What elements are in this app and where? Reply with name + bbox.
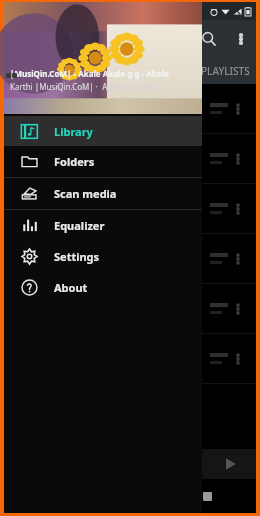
button[interactable]: Folders	[4, 146, 202, 177]
button[interactable]: About	[4, 272, 202, 303]
staticText: Scan media	[54, 186, 117, 201]
button[interactable]: Track options	[4, 134, 256, 183]
button[interactable]: Track options	[4, 234, 256, 283]
button[interactable]: Track options	[4, 284, 256, 333]
staticText: Equalizer	[54, 218, 105, 233]
button[interactable]: Track options	[227, 248, 249, 270]
button[interactable]: More options	[226, 24, 256, 54]
button[interactable]: PLAYLISTS	[201, 64, 250, 78]
button[interactable]: Track options	[227, 98, 249, 120]
button[interactable]: Track options	[227, 348, 249, 370]
button[interactable]: Track options	[227, 198, 249, 220]
button[interactable]: Search	[192, 22, 226, 56]
button[interactable]: Recents	[194, 483, 220, 509]
staticText: |MusiQin.CoM| - Akale Akale g.g - Akale	[10, 68, 169, 79]
button[interactable]: Track options	[227, 148, 249, 170]
button[interactable]: Scan media	[4, 178, 202, 209]
button[interactable]: Play	[218, 452, 242, 476]
staticText: PLAYLISTS	[201, 64, 250, 78]
staticText: Folders	[54, 154, 95, 169]
button[interactable]: Library	[4, 116, 202, 146]
button[interactable]: Track options	[4, 334, 256, 383]
button[interactable]: Track options	[4, 184, 256, 233]
staticText: Library	[54, 124, 93, 139]
staticText: Karthi |MusiQin.CoM| · Akale | MusiQ	[10, 81, 156, 92]
button[interactable]: Track options	[4, 84, 256, 133]
button[interactable]: Equalizer	[4, 210, 202, 241]
button[interactable]: Settings	[4, 241, 202, 272]
staticText: About	[54, 280, 88, 295]
staticText: Settings	[54, 249, 100, 264]
button[interactable]: Track options	[227, 298, 249, 320]
